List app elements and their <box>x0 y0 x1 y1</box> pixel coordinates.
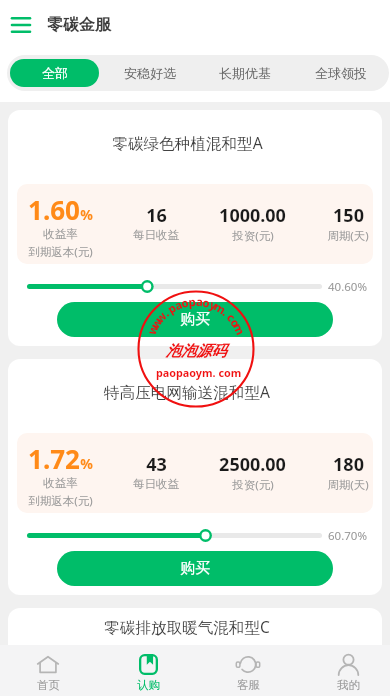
button[interactable]: 全球领投 <box>296 59 386 87</box>
button[interactable]: 长期优基 <box>200 59 290 87</box>
staticText: 收益率 <box>43 476 78 490</box>
staticText: 150 <box>333 203 364 228</box>
staticText: 到期返本(元) <box>28 244 93 260</box>
staticText: 客服 <box>237 678 260 692</box>
staticText: 1.60 <box>28 192 80 227</box>
staticText: 投资(元) <box>232 228 274 244</box>
staticText: 每日收益 <box>133 228 179 242</box>
staticText: 收益率 <box>43 227 78 241</box>
button[interactable]: 购买 <box>57 302 333 337</box>
staticText: 购买 <box>180 559 210 578</box>
button[interactable]: 首页 <box>0 645 96 696</box>
staticText: 特高压电网输送混和型A <box>104 381 270 402</box>
button[interactable]: Menu <box>8 12 34 38</box>
staticText: 全球领投 <box>315 65 367 81</box>
staticText: 每日收益 <box>133 477 179 491</box>
staticText: 零碳金服 <box>47 15 111 35</box>
staticText: 长期优基 <box>219 65 271 81</box>
button[interactable]: 购买 <box>57 551 333 586</box>
staticText: 安稳好选 <box>124 65 176 81</box>
button[interactable]: 全部 <box>10 59 99 87</box>
button[interactable]: 客服 <box>200 645 296 696</box>
staticText: 43 <box>146 452 167 477</box>
staticText: 认购 <box>137 678 160 692</box>
staticText: 投资(元) <box>232 477 274 493</box>
staticText: 1.72 <box>28 441 80 476</box>
staticText: 16 <box>146 203 167 228</box>
staticText: 1000.00 <box>219 203 286 228</box>
staticText: 购买 <box>180 310 210 329</box>
staticText: 首页 <box>37 678 60 692</box>
staticText: 40.60% <box>328 279 367 294</box>
button[interactable]: 安稳好选 <box>105 59 194 87</box>
staticText: 零碳绿色种植混和型A <box>112 132 263 153</box>
staticText: 零碳排放取暖气混和型C <box>104 616 270 637</box>
staticText: 2500.00 <box>219 452 286 477</box>
staticText: % <box>80 205 93 224</box>
staticText: 到期返本(元) <box>28 493 93 509</box>
button[interactable]: 认购 <box>100 645 196 696</box>
staticText: 180 <box>333 452 364 477</box>
staticText: 周期(天) <box>327 228 369 244</box>
staticText: 我的 <box>337 678 360 692</box>
button[interactable]: 我的 <box>300 645 390 696</box>
staticText: 全部 <box>42 65 68 81</box>
staticText: 周期(天) <box>327 477 369 493</box>
staticText: % <box>80 454 93 473</box>
staticText: 60.70% <box>328 528 367 543</box>
